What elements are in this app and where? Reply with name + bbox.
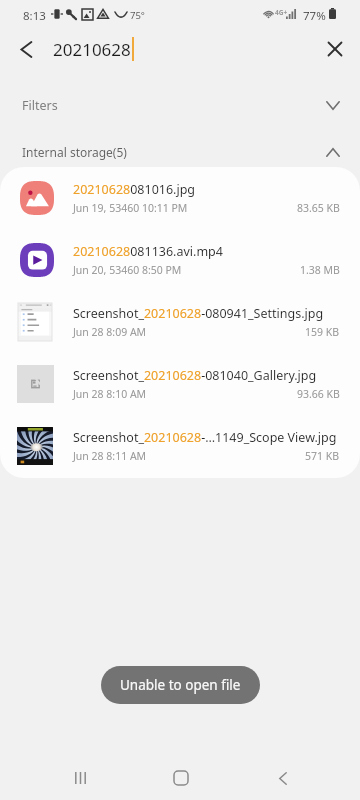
button[interactable]: Screenshot_20210628-080941_Settings.jpg — [0, 291, 360, 353]
staticText: 571 KB — [305, 449, 340, 463]
staticText: Jun 28 8:10 AM — [73, 387, 147, 401]
staticText: 1.38 MB — [300, 263, 340, 277]
button[interactable]: Screenshot_20210628-081040_Gallery.jpg — [0, 353, 360, 415]
staticText: Jun 28 8:09 AM — [73, 325, 147, 339]
staticText: 159 KB — [305, 325, 340, 339]
staticText: 77% — [303, 8, 326, 24]
button[interactable]: Home — [159, 756, 203, 800]
staticText: Jun 20, 53460 8:50 PM — [73, 263, 182, 277]
button[interactable]: Recent apps — [58, 756, 102, 800]
staticText: 4G+ — [275, 8, 288, 17]
staticText: Filters — [22, 97, 58, 114]
staticText: 20210628081136.avi.mp4 — [73, 243, 223, 260]
button[interactable]: Back — [261, 756, 305, 800]
button[interactable]: 20210628081016.jpg — [0, 167, 360, 229]
staticText: 8:13 — [23, 8, 46, 24]
staticText: 20210628 — [53, 38, 131, 61]
button[interactable]: Navigate up — [6, 29, 46, 69]
staticText: 93.66 KB — [297, 387, 340, 401]
staticText: Jun 28 8:11 AM — [73, 449, 147, 463]
staticText: Screenshot_20210628-080941_Settings.jpg — [73, 305, 324, 322]
staticText: Screenshot_20210628-081040_Gallery.jpg — [73, 367, 317, 384]
staticText: 75° — [130, 9, 145, 22]
button[interactable]: Filters — [0, 83, 360, 127]
staticText: Jun 19, 53460 10:11 PM — [73, 201, 188, 215]
staticText: Screenshot_20210628-…1149_Scope View.jpg — [73, 429, 337, 446]
staticText: 83.65 KB — [297, 201, 340, 215]
button[interactable]: 20210628081136.avi.mp4 — [0, 229, 360, 291]
staticText: 20210628081016.jpg — [73, 181, 196, 198]
button[interactable]: Screenshot_20210628-…1149_Scope View.jpg — [0, 415, 360, 477]
button[interactable]: Clear search — [315, 29, 355, 69]
button[interactable]: Internal storage(5) — [0, 130, 360, 174]
staticText: Internal storage(5) — [22, 144, 127, 160]
staticText: Unable to open file — [120, 676, 241, 694]
